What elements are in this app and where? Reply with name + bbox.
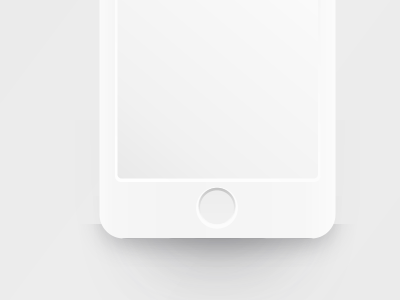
button[interactable]: Home — [195, 184, 239, 229]
